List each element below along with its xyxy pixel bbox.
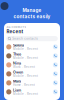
staticText: ALL CONTACTS [6, 26, 26, 28]
staticText: Mobile · Recent [13, 74, 38, 78]
staticText: Serena [13, 43, 24, 47]
staticText: Liam [13, 88, 21, 92]
staticText: Nina [13, 61, 21, 65]
staticText: Owen [13, 70, 23, 74]
staticText: Mobile · Recent [13, 92, 38, 96]
button[interactable]: Owen [4, 69, 60, 78]
button[interactable]: Nina [4, 60, 60, 69]
button[interactable]: Mara [4, 78, 60, 87]
staticText: Recent [6, 29, 23, 34]
staticText: contacts easily [13, 14, 50, 19]
button[interactable]: Liam [4, 87, 60, 96]
staticText: Manage [22, 8, 41, 13]
button[interactable]: Theo [4, 51, 60, 60]
staticText: Theo [13, 52, 21, 56]
staticText: Home · Recent [13, 83, 35, 87]
staticText: Search contacts [12, 37, 38, 40]
staticText: Mobile · Recent [13, 47, 38, 51]
staticText: Work · Recent [13, 65, 35, 69]
staticText: Mobile · Recent [13, 56, 38, 60]
button[interactable]: Serena [4, 42, 60, 51]
staticText: Mara [13, 79, 21, 83]
